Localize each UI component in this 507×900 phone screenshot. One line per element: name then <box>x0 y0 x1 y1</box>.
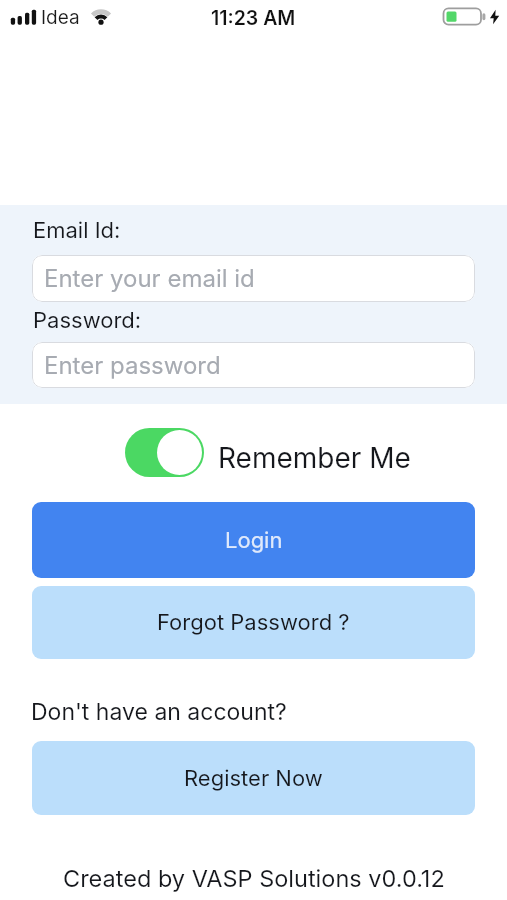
staticText: Password: <box>33 307 142 334</box>
button[interactable]: Enter your email id <box>32 255 475 302</box>
staticText: Email Id: <box>33 217 121 244</box>
staticText: 11:23 AM <box>211 6 296 30</box>
button[interactable]: Login <box>32 502 475 578</box>
staticText: Don't have an account? <box>31 698 287 726</box>
button[interactable]: Enter password <box>32 342 475 388</box>
staticText: Created by VASP Solutions v0.0.12 <box>63 864 445 892</box>
staticText: Forgot Password ? <box>157 609 350 636</box>
button[interactable]: Forgot Password ? <box>32 586 475 659</box>
staticText: Register Now <box>184 765 323 792</box>
staticText: Enter password <box>44 351 221 380</box>
staticText: Login <box>225 527 283 554</box>
staticText: Idea <box>41 6 80 29</box>
staticText: Enter your email id <box>44 264 255 293</box>
staticText: Remember Me <box>218 441 411 475</box>
button[interactable]: Register Now <box>32 741 475 815</box>
button[interactable] <box>125 428 204 477</box>
